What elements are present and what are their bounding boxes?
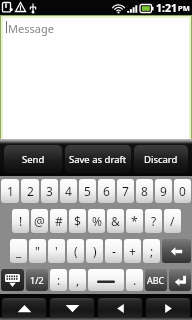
other: Space [97,277,115,283]
button[interactable]: Save as draft [65,145,131,173]
button[interactable]: . [126,269,143,291]
staticText: _ [16,243,22,259]
button[interactable]: Left [98,298,142,318]
button[interactable]: Backspace [162,239,191,263]
staticText: % [92,213,102,229]
button[interactable]: ; [143,239,160,263]
staticText: 1/2 [30,274,44,286]
button[interactable]: $ [69,209,86,233]
other: Hide keyboard [5,274,20,287]
button[interactable]: ! [12,209,29,233]
button[interactable]: " [29,239,46,263]
button[interactable]: 1 [1,179,19,203]
button[interactable]: 5 [79,179,96,203]
staticText: 5 [84,183,91,199]
button[interactable]: 4 [60,179,77,203]
staticText: & [111,213,120,229]
button[interactable]: Send [4,145,62,173]
button[interactable]: : [50,269,67,291]
button[interactable]: 7 [117,179,134,203]
staticText: : [57,272,61,288]
button[interactable]: 2 [21,179,39,203]
button[interactable]: Hide keyboard [1,269,24,291]
staticText: ! [19,213,23,229]
staticText: " [35,243,40,259]
staticText: , [76,272,80,288]
staticText: 0 [179,183,186,199]
staticText: 6 [103,183,110,199]
staticText: 1 [7,183,14,199]
button[interactable]: % [88,209,105,233]
button[interactable]: Down [50,298,94,318]
staticText: ) [93,243,97,259]
button[interactable]: 1/2 [26,269,48,291]
button[interactable]: , [69,269,86,291]
button[interactable]: Space [88,269,124,291]
button[interactable]: / [164,209,181,233]
staticText: ABC [147,274,165,286]
staticText: Send [22,153,45,166]
staticText: Message [8,21,54,36]
button[interactable]: Discard [134,145,188,173]
button[interactable]: 8 [136,179,153,203]
staticText: # [55,213,63,229]
staticText: ( [74,243,78,259]
button[interactable]: _ [10,239,27,263]
staticText: PM [178,3,190,13]
staticText: 9 [160,183,167,199]
button[interactable]: Enter [169,269,191,291]
staticText: 8 [141,183,148,199]
staticText: $ [74,213,81,229]
staticText: Save as draft [69,153,127,166]
button[interactable]: # [50,209,67,233]
button[interactable]: @ [31,209,48,233]
button[interactable]: ' [48,239,65,263]
staticText: Discard [144,153,178,166]
button[interactable]: 3 [41,179,58,203]
button[interactable]: Right [146,298,190,318]
staticText: - [112,243,116,259]
other: Backspace [170,245,183,258]
button[interactable]: Up [2,298,46,318]
button[interactable]: ? [145,209,162,233]
staticText: @ [34,213,45,229]
button[interactable]: & [107,209,124,233]
staticText: ; [150,243,154,259]
staticText: 1:21 [156,1,177,15]
staticText: * [131,213,138,229]
staticText: 3 [46,183,53,199]
button[interactable]: - [105,239,122,263]
button[interactable]: ABC [145,269,167,291]
staticText: + [129,243,136,259]
staticText: 7 [122,183,129,199]
button[interactable]: ( [67,239,84,263]
other: Enter [174,274,187,287]
staticText: ' [55,243,58,259]
staticText: . [133,272,137,288]
button[interactable]: * [126,209,143,233]
button[interactable]: + [124,239,141,263]
staticText: 4 [65,183,72,199]
staticText: 2 [27,183,34,199]
button[interactable]: 6 [98,179,115,203]
button[interactable]: ) [86,239,103,263]
staticText: / [170,213,175,229]
button[interactable]: 9 [155,179,172,203]
staticText: ? [151,213,157,229]
button[interactable]: 0 [174,179,191,203]
